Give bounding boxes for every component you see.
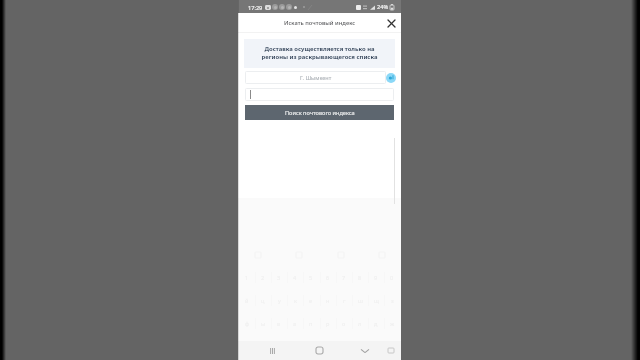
staticText: 6 (326, 274, 330, 281)
button[interactable]: Hide keyboard (357, 343, 372, 358)
staticText: 9 (374, 274, 378, 281)
button[interactable]: Recent apps (265, 343, 280, 358)
button[interactable] (245, 88, 394, 101)
button[interactable]: Г. Шымкент (245, 71, 386, 84)
staticText: к (294, 297, 297, 304)
staticText: о (342, 320, 346, 327)
staticText: п (309, 320, 313, 327)
staticText: 2 (261, 274, 265, 281)
staticText: ж (390, 320, 395, 327)
staticText: в (277, 320, 281, 327)
staticText: Искать почтовый индекс (284, 19, 356, 27)
staticText: ш (358, 297, 363, 304)
staticText: ы (261, 320, 266, 327)
staticText: 3 (277, 274, 281, 281)
staticText: ц (261, 297, 265, 304)
button[interactable]: Close (384, 16, 399, 31)
staticText: 17:29 (248, 4, 263, 12)
staticText: н (326, 297, 330, 304)
staticText: 4 (293, 274, 297, 281)
staticText: щ (374, 297, 379, 304)
staticText: Доставка осуществляется только на регион… (244, 45, 395, 60)
button[interactable]: Поиск почтового индекса (245, 105, 394, 120)
staticText: ф (245, 320, 250, 327)
staticText: 5 (309, 274, 313, 281)
button[interactable]: Change keyboard (385, 344, 397, 356)
staticText: д (374, 320, 378, 327)
staticText: Поиск почтового индекса (285, 109, 355, 117)
staticText: у (278, 297, 281, 304)
staticText: р (326, 320, 330, 327)
staticText: 0 (390, 274, 394, 281)
staticText: 8 (358, 274, 362, 281)
button[interactable]: Home (312, 343, 327, 358)
staticText: е (309, 297, 313, 304)
staticText: 24% (377, 3, 389, 11)
staticText: й (245, 297, 249, 304)
button[interactable]: Open region dropdown (386, 73, 396, 83)
staticText: а (293, 320, 297, 327)
staticText: Г. Шымкент (300, 74, 332, 81)
